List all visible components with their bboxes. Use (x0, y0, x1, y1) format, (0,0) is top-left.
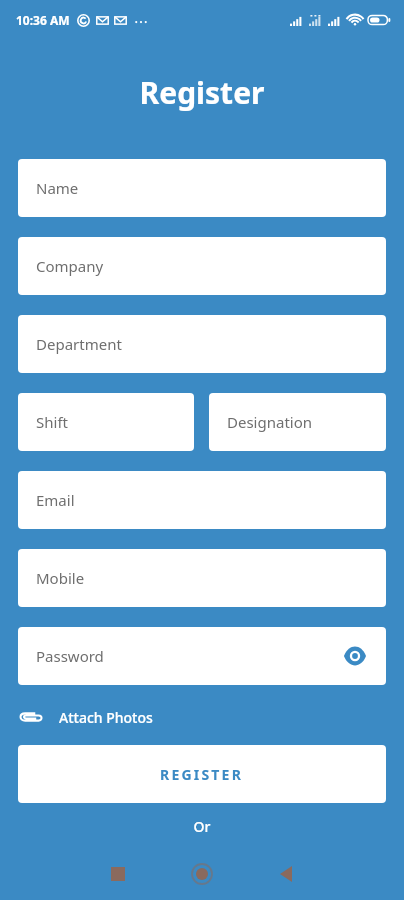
button[interactable]: Password (18, 627, 386, 685)
staticText: Email (36, 490, 75, 510)
staticText: Department (36, 334, 122, 354)
staticText: Or (18, 817, 386, 836)
button[interactable]: Company (18, 237, 386, 295)
button[interactable]: Name (18, 159, 386, 217)
button[interactable]: Home (160, 852, 244, 896)
button[interactable]: Email (18, 471, 386, 529)
staticText: Company (36, 256, 104, 276)
button[interactable]: Recent apps (76, 852, 160, 896)
button[interactable]: Shift (18, 393, 194, 451)
button[interactable]: Department (18, 315, 386, 373)
staticText: Password (36, 646, 104, 666)
button[interactable]: Mobile (18, 549, 386, 607)
button[interactable]: Designation (209, 393, 386, 451)
staticText: Mobile (36, 568, 85, 588)
staticText: Register (0, 72, 404, 113)
button[interactable]: REGISTER (18, 745, 386, 803)
button[interactable]: Show password (340, 641, 370, 671)
staticText: Attach Photos (59, 708, 153, 727)
staticText: Designation (227, 412, 313, 432)
button[interactable]: Attach Photos (18, 700, 386, 734)
staticText: Shift (36, 412, 68, 432)
button[interactable]: Back (244, 852, 328, 896)
staticText: Name (36, 178, 79, 198)
staticText: 10:36 AM (16, 12, 70, 28)
staticText: REGISTER (160, 765, 244, 784)
